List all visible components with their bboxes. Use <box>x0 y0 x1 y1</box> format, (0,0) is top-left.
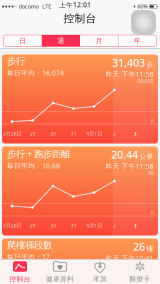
staticText: 公里 <box>139 152 153 161</box>
staticText: 來源 <box>93 275 107 283</box>
staticText: 30 <box>147 169 153 177</box>
staticText: 樓 <box>146 244 153 253</box>
staticText: 3 <box>133 222 136 229</box>
staticText: 上午12:01 <box>59 0 91 9</box>
staticText: 週 <box>57 37 64 45</box>
staticText: 50,000 <box>137 77 153 85</box>
staticText: 31,403 <box>112 55 145 70</box>
staticText: 31 <box>70 130 76 137</box>
staticText: 20.44 <box>111 147 138 162</box>
staticText: 步行 + 跑步距離 <box>7 147 70 160</box>
staticText: 29 <box>29 222 35 229</box>
button[interactable]: 健康資料 <box>40 261 80 283</box>
button[interactable]: 年 <box>118 35 156 46</box>
staticText: 26 <box>133 239 145 254</box>
staticText: 每日平均：16,074 <box>7 68 64 77</box>
staticText: 0 <box>150 209 153 216</box>
staticText: 步行 <box>7 55 25 67</box>
staticText: 醫療卡 <box>129 275 150 283</box>
button[interactable]: 週 <box>42 35 80 46</box>
staticText: LTE <box>42 3 51 10</box>
button[interactable]: 爬樓梯段數 <box>2 238 158 284</box>
staticText: 年 <box>134 37 141 45</box>
staticText: 30 <box>50 222 56 229</box>
staticText: 2 <box>113 222 116 229</box>
staticText: 控制台 <box>9 275 30 283</box>
button[interactable]: 步行 + 跑步距離 <box>2 146 158 235</box>
staticText: 3月28日 <box>2 222 21 229</box>
button[interactable]: AssistiveTouch <box>131 10 156 35</box>
button[interactable]: 月 <box>80 35 118 46</box>
button[interactable]: 日 <box>3 35 42 46</box>
staticText: docomo <box>19 3 39 10</box>
staticText: 2 <box>113 130 116 137</box>
staticText: 每日平均：17 <box>7 252 50 261</box>
button[interactable]: 步行 <box>2 54 158 143</box>
button[interactable]: 來源 <box>80 261 120 283</box>
staticText: 昨天 下午11:58 <box>105 70 153 79</box>
button[interactable]: 醫療卡 <box>120 261 160 283</box>
staticText: 爬樓梯段數 <box>7 239 52 251</box>
button[interactable]: 控制台 <box>0 261 40 283</box>
staticText: 每日平均：10.68 <box>7 161 60 170</box>
staticText: 控制台 <box>63 12 96 25</box>
staticText: 0 <box>150 117 153 124</box>
staticText: 3月28日 <box>2 130 21 137</box>
staticText: 3 <box>133 130 136 137</box>
staticText: 健康資料 <box>46 275 74 283</box>
staticText: 步 <box>146 60 153 69</box>
staticText: 4月1日 <box>86 130 102 137</box>
staticText: 月 <box>96 37 103 45</box>
staticText: 4月1日 <box>86 222 102 229</box>
staticText: 30 <box>50 130 56 137</box>
staticText: 60% <box>137 3 147 10</box>
staticText: 29 <box>29 130 35 137</box>
staticText: 昨天 下午11:58 <box>105 162 153 171</box>
staticText: 日 <box>19 37 26 45</box>
staticText: 31 <box>70 222 76 229</box>
staticText: 昨天 下午10:41 <box>105 254 153 263</box>
